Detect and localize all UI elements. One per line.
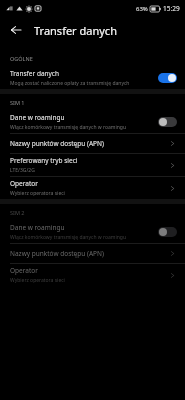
staticText: Wybierz operatora sieci xyxy=(10,190,65,197)
staticText: Dane w roamingu xyxy=(10,223,65,232)
button[interactable]: Wstecz xyxy=(4,18,28,42)
staticText: OGÓLNE xyxy=(10,55,33,62)
staticText: Preferowany tryb sieci xyxy=(10,156,78,165)
staticText: Dane w roamingu xyxy=(10,113,65,122)
staticText: Mogą zostać naliczone opłaty za transmis… xyxy=(10,80,130,87)
button[interactable]: Preferowany tryb sieci xyxy=(0,154,185,176)
button[interactable]: Nazwy punktów dostępu (APN) xyxy=(0,134,185,153)
staticText: 15:29 xyxy=(163,4,180,13)
staticText: Operator xyxy=(10,179,38,188)
button[interactable]: Nazwy punktów dostępu (APN) xyxy=(0,244,185,263)
staticText: Operator xyxy=(10,266,38,275)
button[interactable]: Transfer danych xyxy=(0,67,185,89)
staticText: SIM 2 xyxy=(10,209,25,216)
button[interactable]: Włączone xyxy=(158,73,177,83)
button[interactable]: Dane w roamingu xyxy=(0,221,185,243)
staticText: Nazwy punktów dostępu (APN) xyxy=(10,139,104,148)
button[interactable]: Wyłączone xyxy=(158,117,177,127)
staticText: LTE/3G/2G xyxy=(10,167,35,174)
button[interactable]: Operator xyxy=(0,264,185,286)
staticText: SIM 1 xyxy=(10,99,25,106)
staticText: 63% xyxy=(136,5,148,13)
staticText: Wybierz operatora sieci xyxy=(10,277,65,284)
button[interactable]: Wyłączone xyxy=(158,227,177,237)
button[interactable]: Dane w roamingu xyxy=(0,111,185,133)
staticText: Nazwy punktów dostępu (APN) xyxy=(10,249,104,258)
button[interactable]: Operator xyxy=(0,177,185,199)
staticText: Włącz komórkowy transmisję danych w roam… xyxy=(10,124,154,131)
staticText: Transfer danych xyxy=(34,23,117,38)
staticText: Transfer danych xyxy=(10,69,60,78)
staticText: Włącz komórkowy transmisję danych w roam… xyxy=(10,234,154,241)
